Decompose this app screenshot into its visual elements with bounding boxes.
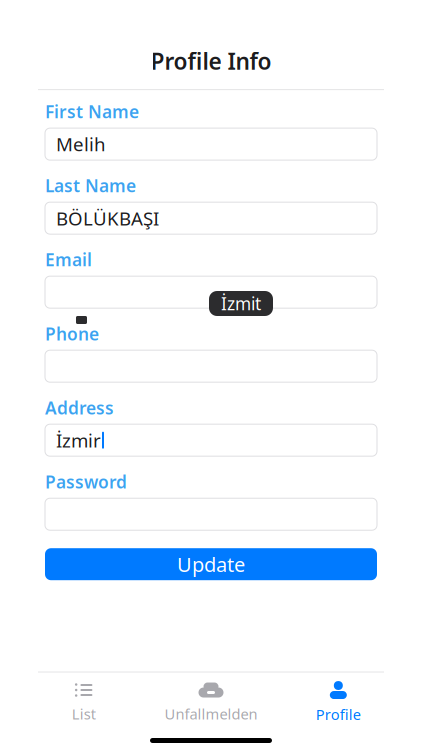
staticText: İzmit — [221, 292, 261, 315]
button[interactable]: İzmir — [45, 424, 377, 456]
button[interactable] — [45, 276, 377, 308]
button[interactable]: Unfallmelden — [147, 673, 275, 729]
button[interactable]: Profile — [275, 672, 402, 730]
button[interactable]: BÖLÜKBAŞI — [45, 202, 377, 234]
staticText: Profile — [316, 704, 361, 724]
staticText: Last Name — [45, 174, 136, 197]
staticText: Email — [45, 248, 92, 271]
staticText: İzmir — [56, 428, 101, 453]
button[interactable]: Update — [45, 548, 377, 580]
button[interactable] — [45, 350, 377, 382]
staticText: List — [72, 704, 96, 723]
staticText: Phone — [45, 322, 99, 345]
staticText: BÖLÜKBAŞI — [56, 206, 159, 230]
staticText: Update — [177, 551, 245, 577]
staticText: Profile Info — [150, 46, 271, 76]
staticText: Melih — [56, 132, 106, 156]
staticText: Password — [45, 470, 127, 493]
button[interactable]: Melih — [45, 128, 377, 160]
button[interactable]: List — [20, 673, 147, 729]
staticText: First Name — [45, 100, 139, 123]
staticText: Unfallmelden — [164, 704, 257, 723]
button[interactable] — [45, 498, 377, 530]
staticText: Address — [45, 396, 114, 419]
